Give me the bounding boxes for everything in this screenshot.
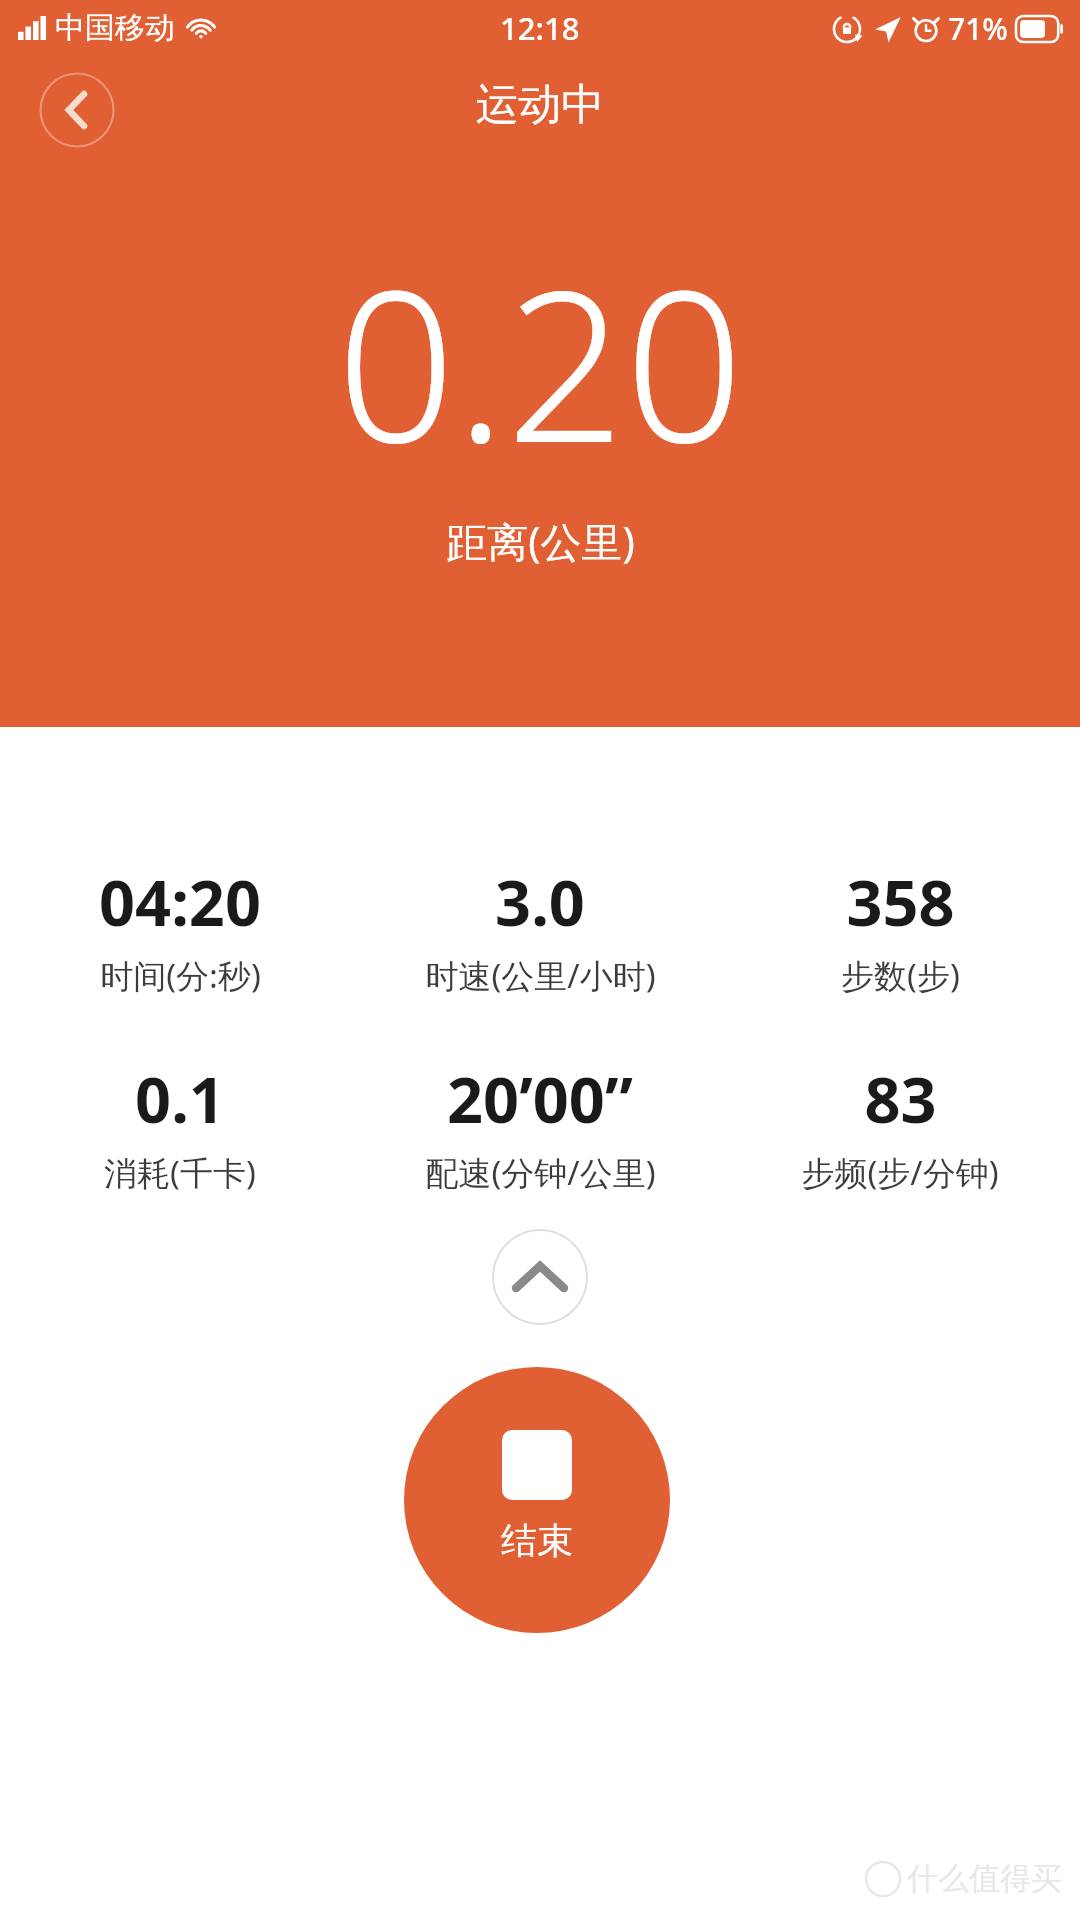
staticText: 0.1 (135, 1056, 225, 1142)
button[interactable]: 结束 (404, 1367, 670, 1633)
staticText: 3.0 (495, 859, 585, 945)
staticText: 12:18 (500, 7, 580, 49)
staticText: 时间(分:秒) (100, 953, 261, 998)
staticText: 运动中 (0, 78, 1080, 132)
staticText: 83 (864, 1056, 937, 1142)
staticText: 71% (948, 8, 1008, 49)
staticText: 04:20 (99, 859, 261, 945)
staticText: 什么值得买 (907, 1859, 1062, 1898)
staticText: 步数(步) (841, 953, 960, 998)
staticText: 0.20 (336, 220, 744, 503)
staticText: 配速(分钟/公里) (425, 1150, 656, 1195)
staticText: 结束 (501, 1518, 573, 1563)
button[interactable]: 展开 (492, 1229, 588, 1325)
staticText: 时速(公里/小时) (425, 953, 656, 998)
staticText: 20’00” (447, 1056, 633, 1142)
staticText: 中国移动 (55, 9, 175, 47)
staticText: 步频(步/分钟) (801, 1150, 999, 1195)
staticText: 距离(公里) (446, 513, 635, 569)
staticText: 358 (846, 859, 955, 945)
staticText: 消耗(千卡) (104, 1150, 256, 1195)
button[interactable]: 返回 (39, 72, 115, 148)
